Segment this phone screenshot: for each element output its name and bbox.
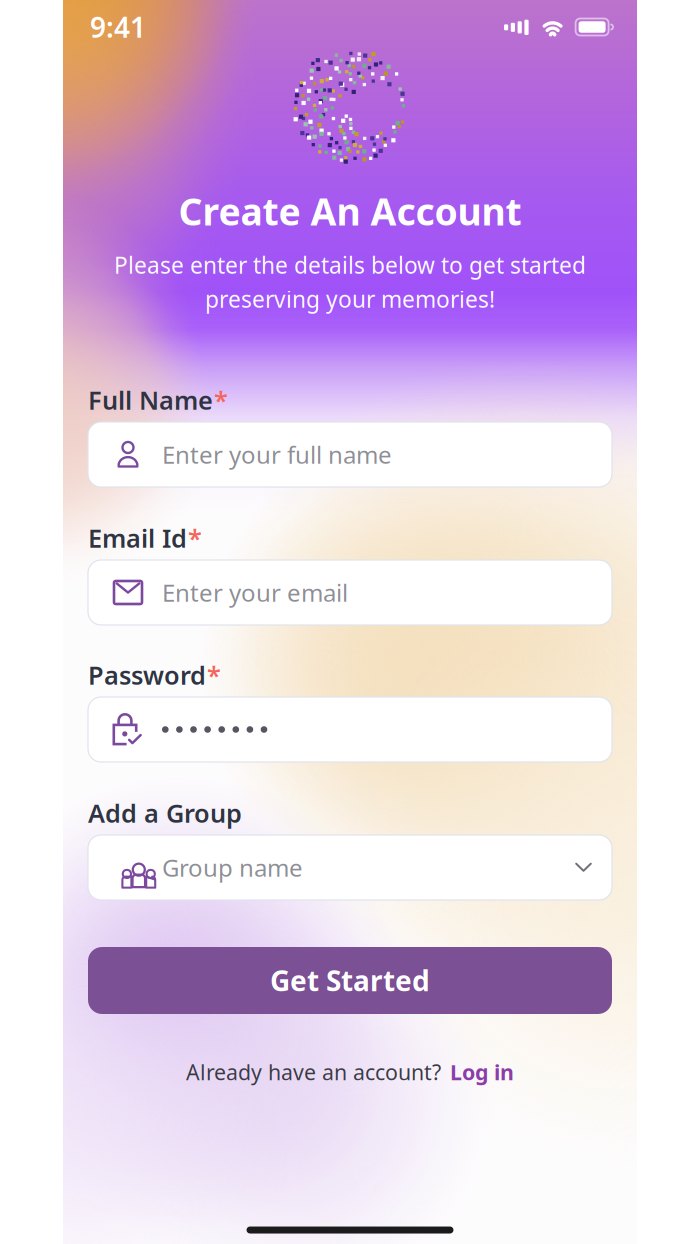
- staticText: preserving your memories!: [205, 284, 495, 314]
- staticText: Already have an account?: [186, 1058, 441, 1086]
- staticText: Enter your email: [162, 577, 348, 608]
- staticText: Please enter the details below to get st…: [114, 250, 586, 280]
- staticText: Enter your full name: [162, 439, 392, 470]
- button[interactable]: Log in: [450, 1058, 514, 1086]
- staticText: Get Started: [270, 962, 430, 999]
- button[interactable]: [88, 697, 612, 762]
- staticText: Create An Account: [178, 186, 521, 236]
- staticText: 9:41: [90, 8, 146, 46]
- staticText: *: [207, 658, 221, 692]
- staticText: Log in: [450, 1058, 514, 1086]
- staticText: Group name: [162, 852, 303, 883]
- staticText: Password: [88, 658, 206, 692]
- staticText: Email Id: [88, 521, 187, 555]
- button[interactable]: Get Started: [88, 947, 612, 1014]
- staticText: *: [214, 383, 228, 417]
- button[interactable]: Enter your full name: [88, 422, 612, 487]
- staticText: Full Name: [88, 383, 213, 417]
- staticText: Add a Group: [88, 796, 242, 830]
- staticText: *: [188, 521, 202, 555]
- button[interactable]: Enter your email: [88, 560, 612, 625]
- button[interactable]: Group name: [88, 835, 612, 900]
